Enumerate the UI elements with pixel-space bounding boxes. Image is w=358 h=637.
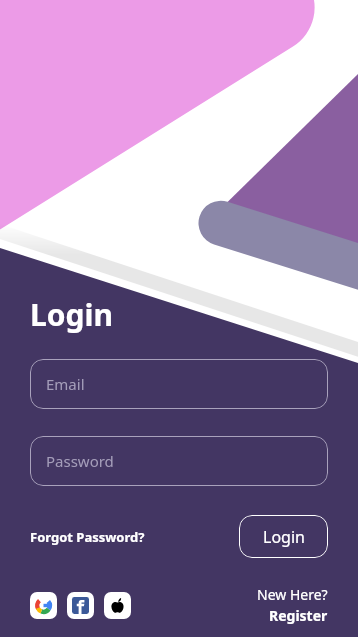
button[interactable]: Forgot Password? bbox=[30, 522, 145, 552]
button[interactable]: Sign in with Facebook bbox=[67, 592, 94, 619]
button[interactable]: Password bbox=[30, 436, 328, 486]
staticText: Login bbox=[263, 526, 305, 548]
button[interactable]: Sign in with Apple bbox=[104, 592, 131, 619]
button[interactable]: Sign in with Google bbox=[30, 592, 57, 619]
staticText: Login bbox=[30, 294, 113, 335]
staticText: Register bbox=[269, 606, 328, 625]
staticText: Password bbox=[46, 451, 114, 471]
button[interactable]: New Here? bbox=[257, 583, 328, 627]
button[interactable]: Login bbox=[239, 515, 328, 558]
button[interactable]: Email bbox=[30, 359, 328, 409]
staticText: New Here? bbox=[257, 585, 328, 604]
staticText: Email bbox=[46, 374, 85, 394]
staticText: Forgot Password? bbox=[30, 528, 145, 546]
